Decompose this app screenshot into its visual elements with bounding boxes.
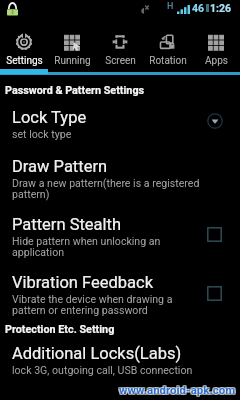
staticText: Vibration Feedback bbox=[12, 273, 154, 292]
staticText: 46 bbox=[192, 2, 205, 14]
button[interactable]: Apps bbox=[192, 15, 240, 85]
staticText: www.android-apk.com bbox=[120, 383, 237, 396]
staticText: www.android-apk.com bbox=[120, 382, 237, 395]
button[interactable]: Vibration Feedback bbox=[0, 273, 240, 316]
button[interactable]: Pattern Stealth bbox=[0, 215, 240, 258]
button[interactable]: Expand bbox=[207, 113, 223, 129]
staticText: 1:26 bbox=[210, 2, 232, 14]
button[interactable]: Toggle bbox=[207, 227, 222, 242]
staticText: Settings bbox=[6, 55, 43, 67]
staticText: Draw Pattern bbox=[12, 157, 108, 176]
staticText: www.android-apk.com bbox=[119, 383, 236, 396]
staticText: Password & Pattern Settings bbox=[5, 84, 145, 97]
staticText: www.android-apk.com bbox=[120, 384, 237, 397]
staticText: Hide pattern when unlocking an applicati… bbox=[12, 235, 202, 258]
staticText: Running bbox=[54, 55, 91, 67]
staticText: Pattern Stealth bbox=[12, 215, 122, 234]
staticText: Rotation bbox=[149, 55, 187, 67]
button[interactable]: Running bbox=[48, 15, 96, 85]
staticText: www.android-apk.com bbox=[119, 384, 236, 397]
staticText: www.android-apk.com bbox=[118, 384, 235, 397]
staticText: Additional Locks(Labs) bbox=[12, 344, 182, 363]
button[interactable]: Additional Locks(Labs) bbox=[0, 344, 240, 376]
staticText: www.android-apk.com bbox=[119, 382, 236, 395]
staticText: Screen bbox=[105, 55, 136, 67]
staticText: www.android-apk.com bbox=[118, 382, 235, 395]
button[interactable]: Lock Type bbox=[0, 108, 240, 140]
button[interactable]: Draw Pattern bbox=[0, 157, 240, 200]
button[interactable]: Screen bbox=[96, 15, 144, 85]
staticText: Draw a new pattern(there is a registered… bbox=[12, 177, 202, 200]
staticText: set lock type bbox=[12, 128, 72, 140]
staticText: Lock Type bbox=[12, 108, 87, 127]
staticText: lock 3G, outgoing call, USB connection bbox=[12, 364, 193, 376]
staticText: Apps bbox=[205, 55, 228, 67]
staticText: Vibrate the device when drawing a patter… bbox=[12, 293, 202, 316]
staticText: www.android-apk.com bbox=[118, 383, 235, 396]
staticText: H bbox=[167, 1, 174, 12]
button[interactable]: Toggle bbox=[207, 286, 222, 301]
staticText: Protection Etc. Setting bbox=[5, 323, 115, 336]
button[interactable]: Rotation bbox=[144, 15, 192, 85]
button[interactable]: Settings bbox=[0, 15, 48, 85]
